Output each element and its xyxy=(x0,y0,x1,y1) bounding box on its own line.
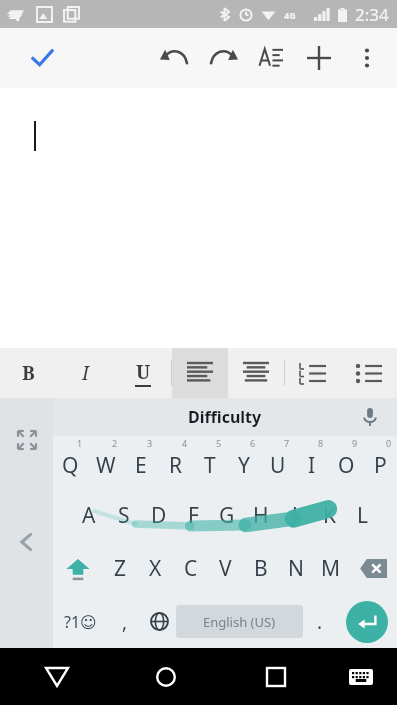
staticText: W xyxy=(96,451,116,480)
button[interactable]: I xyxy=(295,436,329,489)
button[interactable]: Back xyxy=(31,651,83,703)
staticText: V xyxy=(219,554,232,583)
button[interactable]: H xyxy=(244,489,278,542)
button[interactable]: L xyxy=(346,489,380,542)
button[interactable]: Q xyxy=(53,436,88,489)
staticText: R xyxy=(169,451,183,480)
button[interactable]: G xyxy=(210,489,244,542)
button[interactable]: D xyxy=(141,489,176,542)
button[interactable]: Voice input xyxy=(353,400,387,434)
button[interactable]: C xyxy=(173,542,208,595)
staticText: 5 xyxy=(216,437,222,449)
button[interactable]: O xyxy=(329,436,363,489)
button[interactable]: W xyxy=(88,436,123,489)
button[interactable]: U xyxy=(114,348,171,398)
button[interactable]: Done xyxy=(20,36,64,80)
staticText: 6 xyxy=(250,437,256,449)
button[interactable]: Align center xyxy=(228,348,284,398)
staticText: C xyxy=(184,554,198,583)
staticText: F xyxy=(188,501,199,530)
staticText: , xyxy=(122,609,128,635)
button[interactable]: P xyxy=(363,436,397,489)
button[interactable]: Y xyxy=(227,436,261,489)
button[interactable]: E xyxy=(123,436,158,489)
staticText: P xyxy=(374,451,387,480)
button[interactable]: ?1☺ xyxy=(53,595,108,648)
staticText: M xyxy=(321,554,341,583)
staticText: 2:34 xyxy=(355,3,389,26)
button[interactable]: Recent apps xyxy=(250,651,302,703)
staticText: E xyxy=(135,451,147,480)
staticText: 7 xyxy=(284,437,290,449)
staticText: ?1☺ xyxy=(64,611,97,633)
button[interactable]: Insert xyxy=(295,34,343,82)
staticText: N xyxy=(288,554,304,583)
button[interactable]: Delete xyxy=(348,542,397,595)
button[interactable]: Undo xyxy=(151,34,199,82)
staticText: . xyxy=(317,609,323,635)
button[interactable]: J xyxy=(278,489,312,542)
button[interactable]: Shift xyxy=(53,542,103,595)
staticText: D xyxy=(151,501,167,530)
staticText: 1 xyxy=(77,437,83,449)
button[interactable]: Home xyxy=(140,651,192,703)
button[interactable]: K xyxy=(312,489,346,542)
staticText: S xyxy=(118,501,130,530)
staticText: K xyxy=(323,501,336,530)
button[interactable]: Enter xyxy=(346,601,388,643)
staticText: Q xyxy=(62,451,79,480)
button[interactable]: T xyxy=(193,436,227,489)
button[interactable]: N xyxy=(278,542,313,595)
staticText: 8 xyxy=(318,437,324,449)
button[interactable]: U xyxy=(261,436,295,489)
staticText: G xyxy=(219,501,235,530)
staticText: L xyxy=(357,501,369,530)
button[interactable]: Align left xyxy=(172,348,228,398)
staticText: 3 xyxy=(147,437,153,449)
button[interactable]: . xyxy=(303,595,337,648)
button[interactable]: B xyxy=(243,542,278,595)
button[interactable]: More options xyxy=(343,34,391,82)
staticText: H xyxy=(253,501,269,530)
staticText: U xyxy=(136,359,151,385)
button[interactable]: A xyxy=(71,489,106,542)
button[interactable]: Z xyxy=(103,542,138,595)
staticText: 9 xyxy=(352,437,358,449)
button[interactable]: , xyxy=(108,595,142,648)
staticText: J xyxy=(292,501,298,530)
staticText: B xyxy=(254,554,268,583)
button[interactable]: R xyxy=(158,436,193,489)
staticText: Z xyxy=(114,554,127,583)
staticText: U xyxy=(270,451,286,480)
button[interactable]: Hide keyboard xyxy=(337,653,385,701)
button[interactable]: I xyxy=(57,348,114,398)
staticText: Y xyxy=(238,451,250,480)
staticText: O xyxy=(338,451,355,480)
button[interactable]: Text format xyxy=(247,34,295,82)
staticText: T xyxy=(204,451,216,480)
button[interactable]: Bullet list xyxy=(341,348,397,398)
staticText: 4G xyxy=(284,9,296,21)
button[interactable]: V xyxy=(208,542,243,595)
button[interactable]: B xyxy=(0,348,57,398)
button[interactable]: English (US) xyxy=(176,605,303,638)
button[interactable]: Redo xyxy=(199,34,247,82)
staticText: 2 xyxy=(112,437,118,449)
button[interactable]: Difficulty xyxy=(188,406,262,428)
staticText: English (US) xyxy=(203,613,276,631)
button[interactable]: Change language xyxy=(142,595,176,648)
staticText: B xyxy=(22,360,35,386)
button[interactable]: Numbered list xyxy=(285,348,341,398)
button[interactable]: Expand keyboard xyxy=(7,420,47,460)
staticText: A xyxy=(82,501,96,530)
staticText: I xyxy=(82,360,89,386)
button[interactable]: X xyxy=(138,542,173,595)
staticText: X xyxy=(149,554,162,583)
staticText: I xyxy=(308,451,316,480)
staticText: 4 xyxy=(182,437,188,449)
button[interactable]: S xyxy=(106,489,141,542)
staticText: 0 xyxy=(386,437,392,449)
button[interactable]: F xyxy=(176,489,210,542)
button[interactable]: M xyxy=(313,542,348,595)
button[interactable]: Back xyxy=(5,520,49,564)
